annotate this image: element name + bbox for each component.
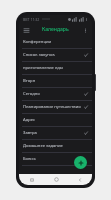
button[interactable]: Back bbox=[68, 174, 92, 185]
staticText: Боюсь bbox=[23, 156, 36, 162]
staticText: Календарь bbox=[42, 26, 69, 33]
staticText: Сегодня bbox=[23, 91, 40, 97]
staticText: BBT 11:32 bbox=[23, 17, 40, 22]
button[interactable]: Recent apps bbox=[19, 174, 44, 185]
button[interactable]: Список закупок bbox=[19, 49, 92, 61]
button[interactable]: Адрес bbox=[19, 114, 92, 126]
button[interactable]: Сегодня bbox=[19, 88, 92, 100]
button[interactable]: Боюсь bbox=[19, 153, 92, 165]
staticText: Планирование путешествия bbox=[23, 104, 81, 110]
button[interactable]: Планирование путешествия bbox=[19, 101, 92, 113]
staticText: Адрес bbox=[23, 117, 36, 123]
staticText: Завтра bbox=[23, 130, 37, 136]
staticText: Список закупок bbox=[23, 52, 55, 58]
button[interactable]: Open navigation drawer bbox=[21, 25, 31, 35]
button[interactable]: приготовление еды bbox=[19, 62, 92, 74]
button[interactable]: More options bbox=[80, 25, 90, 35]
button[interactable]: Домашнее задание bbox=[19, 140, 92, 152]
staticText: Конференции bbox=[23, 39, 52, 45]
button[interactable]: Вторн bbox=[19, 75, 92, 87]
button[interactable]: Завтра bbox=[19, 127, 92, 139]
staticText: приготовление еды bbox=[23, 65, 63, 71]
staticText: Вторн bbox=[23, 78, 36, 84]
button[interactable]: Конференции bbox=[19, 36, 92, 48]
button[interactable]: Home bbox=[44, 174, 68, 185]
button[interactable]: Add event bbox=[74, 156, 87, 169]
staticText: Домашнее задание bbox=[23, 143, 63, 149]
